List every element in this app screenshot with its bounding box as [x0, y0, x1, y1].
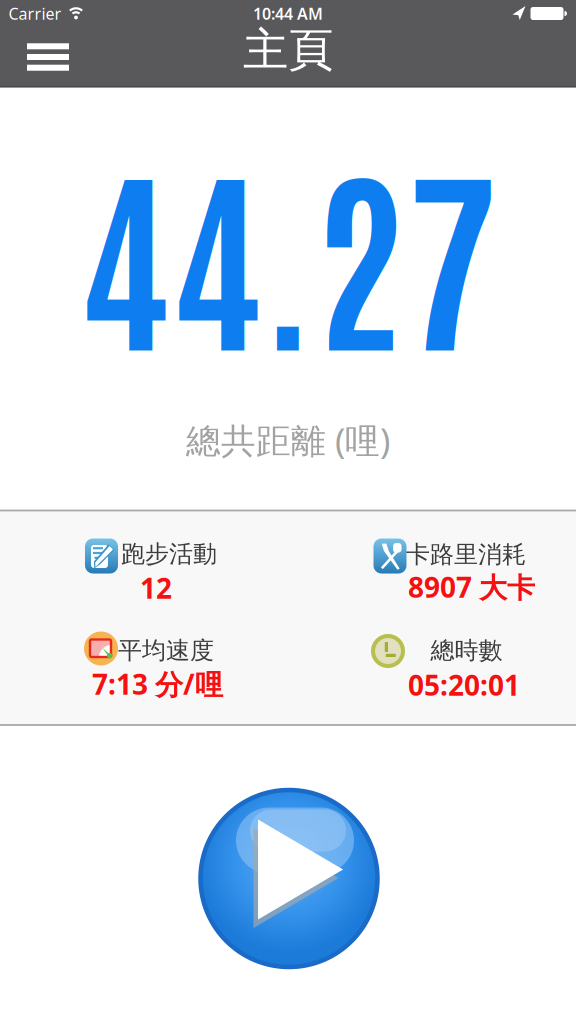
staticText: 05:20:01	[408, 666, 520, 704]
staticText: 卡路里消耗	[406, 540, 526, 569]
staticText: 12	[140, 569, 172, 607]
staticText: Carrier	[8, 3, 61, 24]
staticText: 8907 大卡	[408, 568, 535, 606]
button[interactable]: Menu	[19, 35, 77, 79]
staticText: 44.27	[78, 122, 497, 378]
staticText: 跑步活動	[121, 539, 217, 569]
staticText: 總共距離 (哩)	[186, 417, 390, 463]
staticText: 總時數	[430, 636, 502, 665]
staticText: 10:44 AM	[253, 3, 323, 24]
staticText: 7:13 分/哩	[92, 665, 223, 703]
staticText: 平均速度	[118, 636, 214, 665]
staticText: 主頁	[243, 22, 333, 78]
button[interactable]: Start run	[199, 788, 379, 968]
